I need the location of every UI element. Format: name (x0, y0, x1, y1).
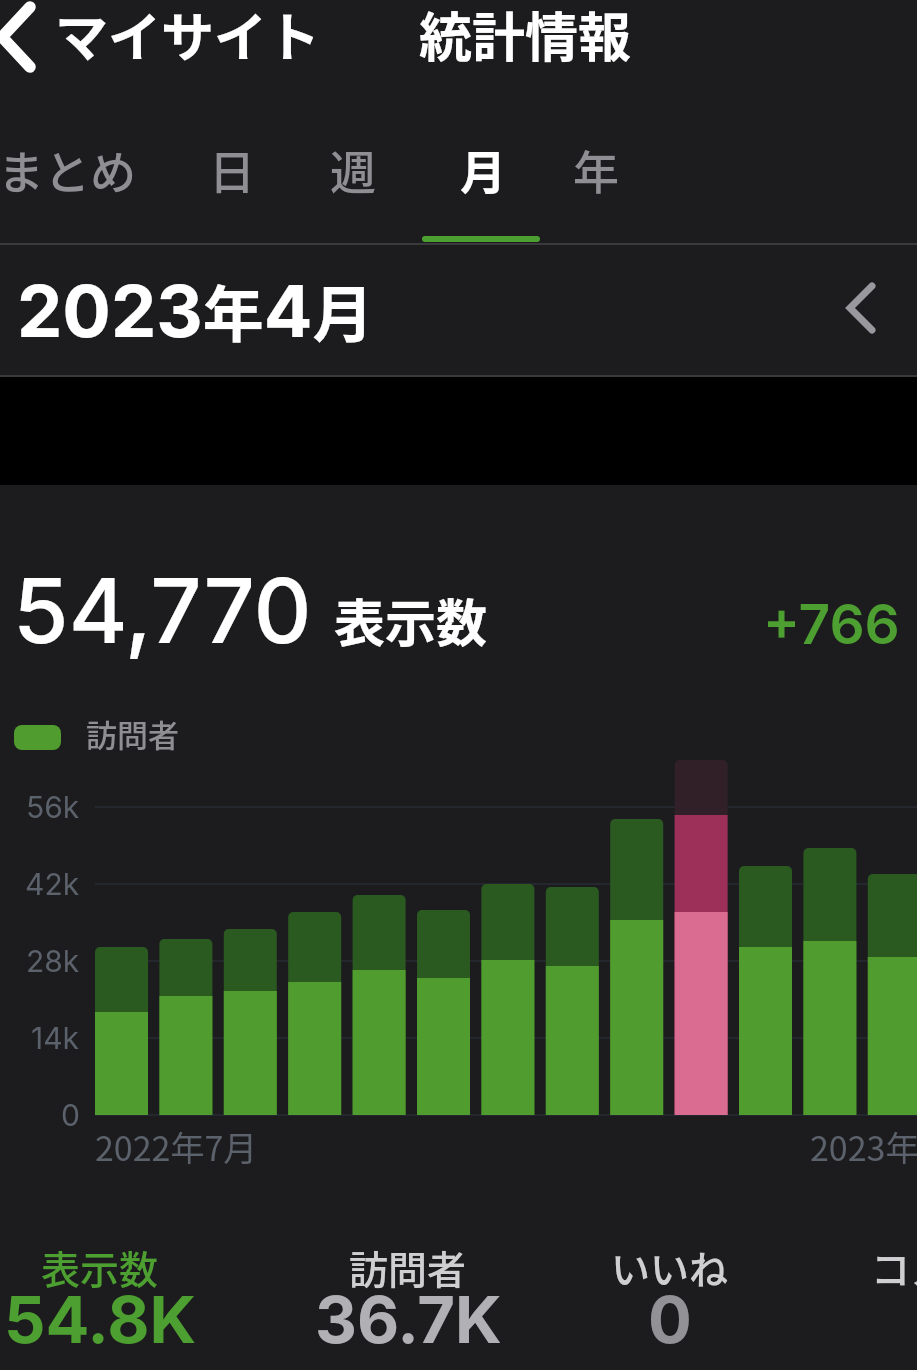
staticText: +766 (763, 591, 900, 658)
staticText: 訪問者 (86, 711, 179, 756)
staticText: 表示数 (334, 583, 488, 657)
staticText: 年 (573, 136, 619, 203)
staticText: 統計情報 (419, 0, 631, 73)
staticText: マイサイト (55, 0, 320, 73)
button[interactable]: 年 (559, 136, 639, 208)
button[interactable]: 表示数 (0, 1238, 210, 1364)
button[interactable]: いいね (560, 1238, 780, 1364)
staticText: 0 (648, 1280, 692, 1359)
staticText: 2022年7月 (95, 1122, 258, 1171)
button[interactable]: まとめ (0, 136, 156, 208)
staticText: 56k (26, 789, 80, 825)
staticText: 28k (26, 943, 80, 979)
staticText: 2023年4月 (17, 266, 374, 354)
staticText: いいね (611, 1239, 729, 1295)
staticText: 54,770 (13, 556, 312, 665)
button[interactable]: 日 (195, 136, 275, 208)
button[interactable]: 2023年4月 (0, 245, 917, 375)
staticText: コメント (871, 1239, 917, 1295)
button[interactable]: コメント (839, 1238, 917, 1364)
staticText: 0 (61, 1097, 80, 1133)
staticText: 月 (460, 136, 506, 203)
staticText: 14k (31, 1020, 80, 1056)
staticText: 日 (209, 136, 255, 203)
staticText: 36.7K (315, 1280, 502, 1359)
staticText: 週 (330, 136, 376, 203)
button[interactable]: 月 (446, 136, 526, 208)
staticText: 54.8K (4, 1280, 197, 1359)
staticText: 42k (25, 866, 80, 902)
staticText: 2023年1月 (810, 1122, 917, 1171)
button[interactable]: マイサイト (0, 0, 340, 85)
staticText: 訪問者 (349, 1239, 467, 1295)
button[interactable]: 週 (316, 136, 396, 208)
button[interactable]: 訪問者 (298, 1238, 518, 1364)
staticText: 表示数 (41, 1239, 159, 1295)
staticText: まとめ (0, 136, 136, 203)
